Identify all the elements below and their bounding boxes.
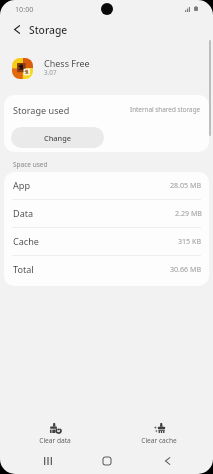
button[interactable]: Clear cache <box>117 412 201 445</box>
staticText: 30.66 MB <box>170 264 202 274</box>
button[interactable]: Back <box>10 20 72 40</box>
staticText: Space used <box>13 160 48 169</box>
button[interactable]: App <box>4 172 209 200</box>
staticText: 10:00 <box>15 4 34 14</box>
staticText: Storage <box>29 23 68 37</box>
button[interactable]: Cache <box>4 228 209 256</box>
staticText: Total <box>13 263 34 275</box>
staticText: 28.05 MB <box>170 180 202 190</box>
staticText: 3.07 <box>44 68 57 77</box>
staticText: Chess Free <box>44 57 90 69</box>
staticText: Data <box>13 207 34 219</box>
button[interactable]: Change <box>11 127 104 148</box>
button[interactable]: Data <box>4 200 209 228</box>
button[interactable]: Home <box>95 449 119 473</box>
button[interactable]: Total <box>4 256 209 284</box>
staticText: 2.29 MB <box>175 208 202 218</box>
staticText: Internal shared storage <box>130 105 201 114</box>
staticText: 315 KB <box>178 236 202 246</box>
button[interactable]: Recent apps <box>36 449 60 473</box>
staticText: Clear data <box>39 436 71 445</box>
button[interactable]: Clear data <box>13 412 97 445</box>
staticText: Clear cache <box>141 436 177 445</box>
staticText: Cache <box>13 235 39 247</box>
staticText: Change <box>44 133 72 143</box>
staticText: App <box>13 179 30 191</box>
button[interactable]: Chess Free <box>0 47 213 87</box>
button[interactable]: Back <box>155 449 179 473</box>
staticText: Storage used <box>13 104 70 116</box>
